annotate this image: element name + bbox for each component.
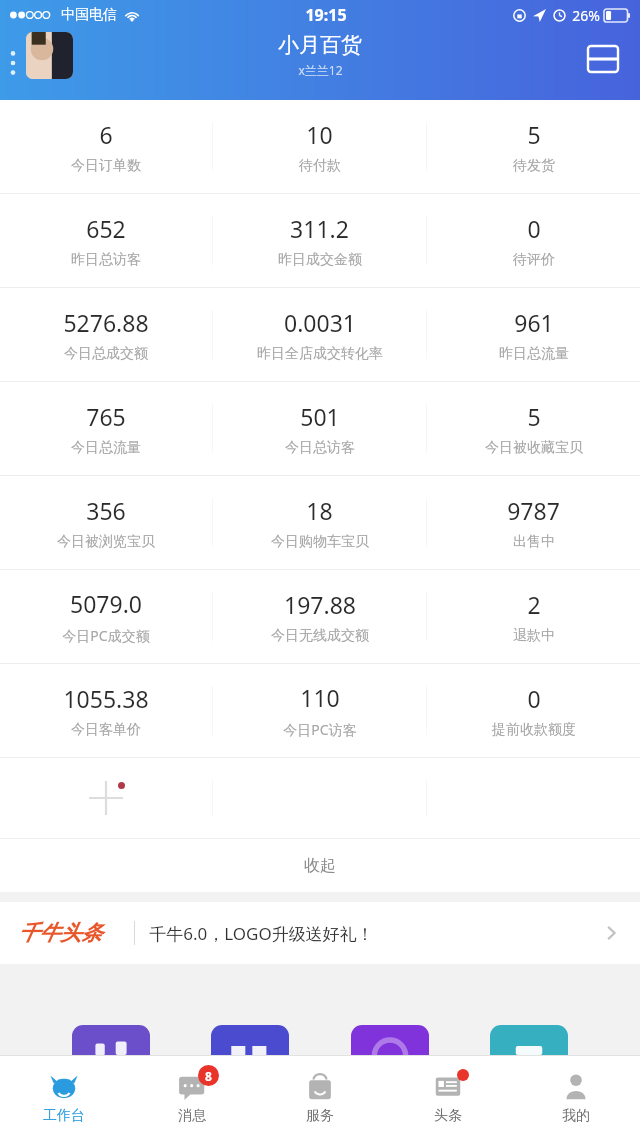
button[interactable]: Add data card [0,758,212,838]
button[interactable]: 8 [128,1056,256,1138]
button[interactable] [490,1025,568,1055]
staticText: 待付款 [299,157,341,175]
staticText: 26% [572,6,600,25]
button[interactable]: 1055.38 [0,664,212,757]
staticText: 18 [306,495,333,526]
staticText: 退款中 [513,627,555,645]
button[interactable]: 356 [0,476,212,569]
staticText: 5 [527,401,541,432]
button[interactable]: 6 [0,100,212,193]
staticText: 6 [99,119,113,150]
button[interactable]: 5079.0 [0,570,212,663]
button[interactable]: Profile avatar [26,32,73,79]
staticText: 1055.38 [63,683,149,714]
staticText: 昨日总访客 [71,251,141,269]
button[interactable]: 765 [0,382,212,475]
button[interactable]: 961 [427,288,640,381]
staticText: 小月百货 [278,32,362,58]
button[interactable]: 18 [213,476,426,569]
staticText: 今日总成交额 [64,345,148,363]
staticText: 5079.0 [70,588,142,619]
staticText: 311.2 [290,213,349,244]
staticText: 0 [527,213,541,244]
staticText: 2 [527,589,541,620]
staticText: 今日客单价 [71,721,141,739]
button[interactable]: 5276.88 [0,288,212,381]
staticText: 头条 [434,1107,462,1125]
staticText: 待评价 [513,251,555,269]
staticText: 今日被收藏宝贝 [485,439,583,457]
button[interactable]: 5 [427,100,640,193]
staticText: 今日总流量 [71,439,141,457]
staticText: 千牛6.0，LOGO升级送好礼！ [149,922,374,945]
button[interactable]: 0 [427,194,640,287]
button[interactable] [211,1025,289,1055]
button[interactable] [351,1025,429,1055]
button[interactable]: 我的 [512,1056,640,1138]
staticText: 千牛头条 [18,920,102,946]
button[interactable]: 10 [213,100,426,193]
staticText: 765 [86,401,126,432]
staticText: 昨日全店成交转化率 [257,345,383,363]
button[interactable]: 9787 [427,476,640,569]
staticText: 工作台 [43,1107,85,1125]
staticText: 356 [86,495,126,526]
staticText: 110 [300,682,340,713]
staticText: 19:15 [305,4,347,26]
button[interactable]: 501 [213,382,426,475]
staticText: 我的 [562,1107,590,1125]
staticText: 中国电信 [61,6,117,24]
staticText: 服务 [306,1107,334,1125]
staticText: 提前收款额度 [492,721,576,739]
button[interactable]: 0 [427,664,640,757]
button[interactable]: 652 [0,194,212,287]
staticText: 今日PC访客 [283,720,357,739]
staticText: 0 [527,683,541,714]
button[interactable]: 197.88 [213,570,426,663]
button[interactable]: 头条 [384,1056,512,1138]
staticText: 10 [306,119,333,150]
staticText: 今日总访客 [285,439,355,457]
staticText: 8 [205,1068,212,1084]
staticText: 197.88 [284,589,356,620]
button[interactable]: 工作台 [0,1056,128,1138]
staticText: 5 [527,119,541,150]
button[interactable]: 千牛头条 [0,902,640,964]
button[interactable]: 5 [427,382,640,475]
staticText: 待发货 [513,157,555,175]
button[interactable]: Switch layout [582,38,624,80]
staticText: 今日无线成交额 [271,627,369,645]
staticText: 出售中 [513,533,555,551]
staticText: 今日被浏览宝贝 [57,533,155,551]
staticText: 9787 [507,495,560,526]
staticText: 501 [300,401,340,432]
staticText: 0.0031 [284,307,356,338]
button[interactable]: 2 [427,570,640,663]
staticText: x兰兰12 [298,62,343,78]
staticText: 961 [514,307,554,338]
button[interactable]: 0.0031 [213,288,426,381]
button[interactable]: 服务 [256,1056,384,1138]
button[interactable]: 110 [213,664,426,757]
staticText: 昨日总流量 [499,345,569,363]
staticText: 5276.88 [63,307,149,338]
button[interactable]: 收起 [0,839,640,892]
staticText: 652 [86,213,126,244]
staticText: 今日订单数 [71,157,141,175]
staticText: 收起 [304,856,336,876]
button[interactable] [72,1025,150,1055]
button[interactable]: 311.2 [213,194,426,287]
staticText: 今日购物车宝贝 [271,533,369,551]
staticText: 今日PC成交额 [62,626,150,645]
staticText: 昨日成交金额 [278,251,362,269]
staticText: 消息 [178,1107,206,1125]
button[interactable]: More options [4,38,22,88]
